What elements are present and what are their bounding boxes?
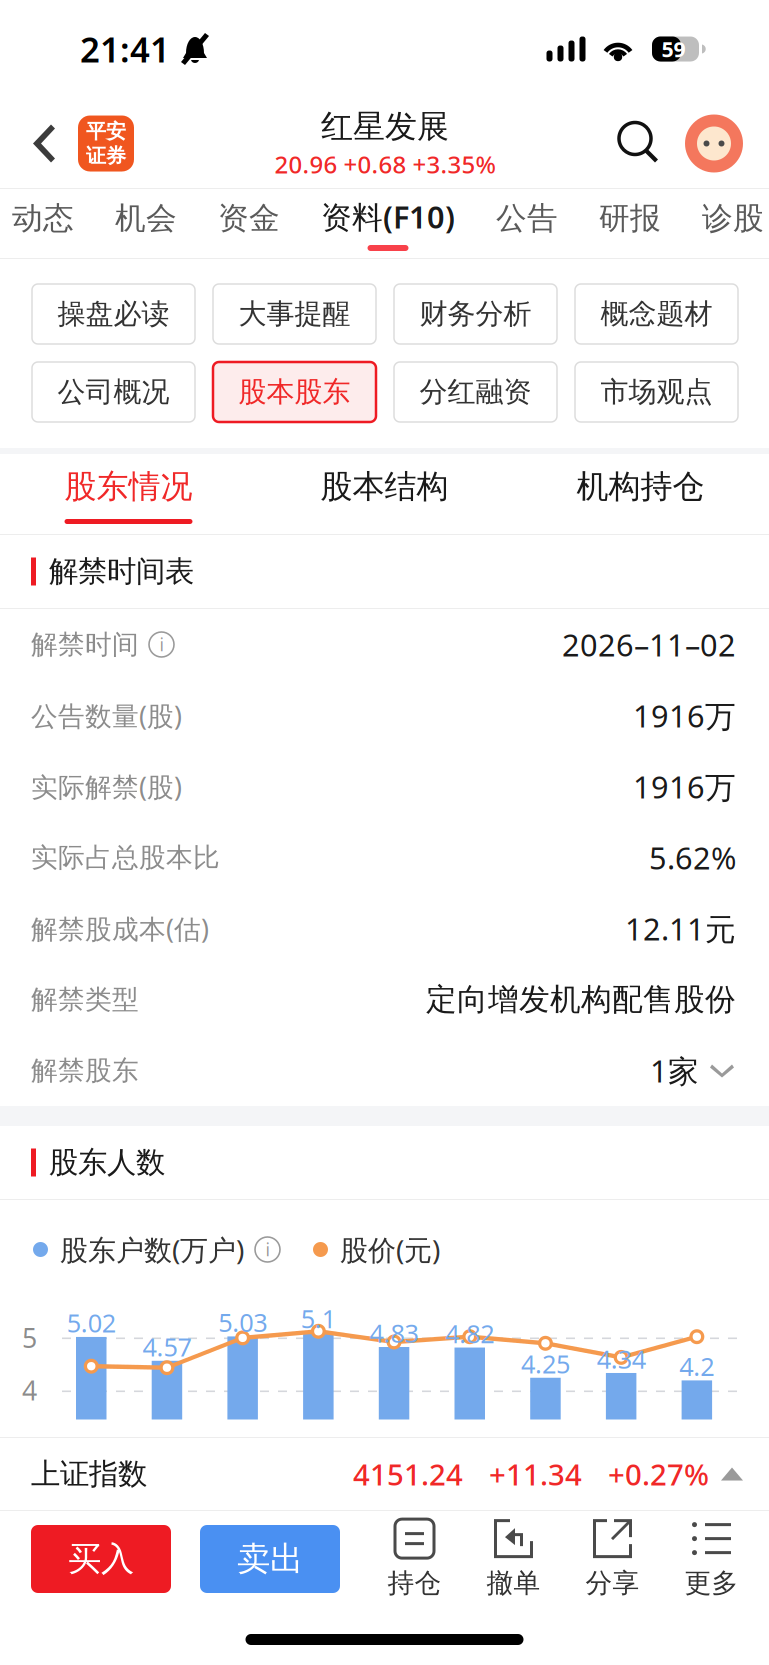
button[interactable]: 动态 (12, 189, 74, 258)
button[interactable]: 持仓 (365, 1513, 464, 1605)
button[interactable]: 股本股东 (213, 362, 376, 422)
button[interactable]: 分红融资 (394, 362, 557, 422)
button[interactable]: 公告 (496, 189, 558, 258)
staticText: 4.2 (679, 1349, 714, 1383)
staticText: 解禁股成本(估) (31, 911, 209, 946)
staticText: 卖出 (237, 1538, 303, 1579)
staticText: 股本股东 (238, 375, 350, 409)
staticText: 股东情况 (64, 467, 192, 506)
staticText: i (159, 633, 163, 656)
button[interactable]: 资金 (218, 189, 280, 258)
staticText: 平安 (86, 119, 126, 143)
staticText: 定向增发机构配售股份 (426, 981, 736, 1018)
button[interactable]: 财务分析 (394, 284, 557, 344)
staticText: 股价(元) (340, 1231, 440, 1268)
staticText: 5.02 (67, 1306, 116, 1339)
staticText: 股东户数(万户) (60, 1231, 244, 1268)
staticText: 实际占总股本比 (31, 841, 220, 874)
staticText: 财务分析 (419, 297, 531, 331)
staticText: 持仓 (387, 1567, 441, 1599)
button[interactable]: 诊股 (702, 189, 764, 258)
staticText: 市场观点 (600, 375, 712, 409)
staticText: 分享 (585, 1567, 639, 1599)
button[interactable]: 公司概况 (32, 362, 195, 422)
staticText: 2026–11–02 (562, 624, 736, 665)
staticText: 4.34 (597, 1342, 646, 1376)
staticText: 动态 (12, 199, 74, 237)
staticText: 解禁时间 (31, 628, 139, 661)
staticText: 分红融资 (419, 375, 531, 409)
staticText: 撤单 (486, 1567, 540, 1599)
staticText: 1家 (650, 1050, 699, 1091)
button[interactable]: 资料(F10) (321, 189, 455, 258)
staticText: 5 (22, 1320, 37, 1355)
button[interactable]: 更多 (662, 1513, 761, 1605)
staticText: 诊股 (702, 199, 764, 237)
staticText: 4.82 (445, 1316, 494, 1350)
staticText: 59 (661, 35, 685, 63)
button[interactable]: 平安证券 (78, 99, 134, 188)
staticText: 公司概况 (57, 375, 169, 409)
staticText: 机会 (115, 199, 177, 237)
button[interactable]: 研报 (599, 189, 661, 258)
staticText: 研报 (599, 199, 661, 237)
staticText: 大事提醒 (238, 297, 350, 331)
staticText: 证券 (86, 143, 126, 168)
staticText: 12.11元 (625, 908, 736, 949)
staticText: 解禁时间表 (49, 553, 194, 589)
staticText: 21:41 (80, 26, 170, 72)
staticText: 概念题材 (600, 297, 712, 331)
staticText: 上证指数 (31, 1456, 147, 1492)
staticText: 1916万 (633, 766, 736, 807)
button[interactable]: 大事提醒 (213, 284, 376, 344)
button[interactable]: 买入 (31, 1525, 171, 1593)
button[interactable]: 市场观点 (575, 362, 738, 422)
staticText: 公告 (496, 199, 558, 237)
staticText: 4151.24 (353, 1454, 463, 1493)
staticText: 5.1 (301, 1302, 336, 1335)
staticText: 资料(F10) (321, 196, 455, 237)
staticText: 公告数量(股) (31, 698, 182, 733)
staticText: 机构持仓 (576, 467, 704, 506)
staticText: i (265, 1238, 269, 1261)
staticText: 解禁类型 (31, 983, 139, 1016)
staticText: 5.62% (649, 837, 736, 878)
staticText: 资金 (218, 199, 280, 237)
staticText: 4 (22, 1372, 37, 1408)
button[interactable]: Search (604, 99, 676, 188)
button[interactable]: Back (11, 99, 78, 188)
button[interactable]: 股东情况 (0, 454, 256, 534)
button[interactable]: 股本结构 (256, 454, 512, 534)
staticText: 解禁股东 (31, 1054, 139, 1087)
staticText: +0.27% (608, 1454, 709, 1493)
staticText: 4.83 (370, 1316, 419, 1350)
staticText: 5.03 (218, 1305, 267, 1339)
button[interactable]: 操盘必读 (32, 284, 195, 344)
staticText: 1916万 (633, 695, 736, 736)
staticText: 红星发展 (321, 107, 449, 146)
staticText: 20.96 +0.68 +3.35% (274, 148, 495, 180)
button[interactable]: 撤单 (464, 1513, 563, 1605)
button[interactable]: Customer service (676, 99, 752, 188)
staticText: 操盘必读 (57, 297, 169, 331)
button[interactable]: 分享 (563, 1513, 662, 1605)
button[interactable]: 卖出 (200, 1525, 340, 1593)
staticText: 股本结构 (320, 467, 448, 506)
staticText: 股东人数 (49, 1144, 165, 1180)
staticText: 4.25 (521, 1347, 570, 1380)
staticText: 更多 (684, 1567, 738, 1599)
button[interactable]: 概念题材 (575, 284, 738, 344)
button[interactable]: 机构持仓 (512, 454, 768, 534)
staticText: 4.57 (142, 1330, 191, 1363)
staticText: 实际解禁(股) (31, 769, 182, 804)
staticText: 买入 (68, 1538, 134, 1579)
button[interactable]: 机会 (115, 189, 177, 258)
staticText: +11.34 (489, 1454, 582, 1493)
